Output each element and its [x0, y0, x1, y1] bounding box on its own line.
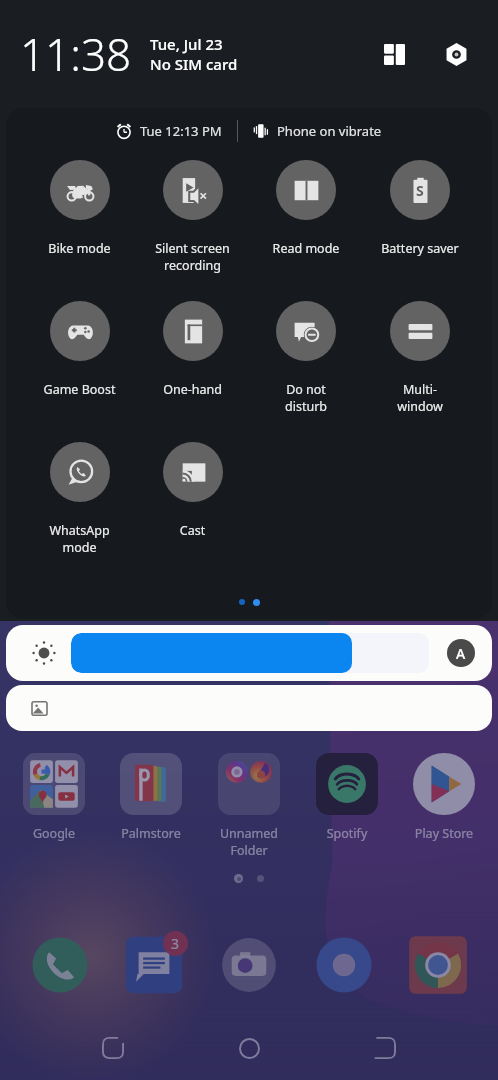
button[interactable]: Phone	[25, 930, 95, 1000]
button[interactable]: Settings	[438, 36, 474, 72]
button[interactable]: Auto brightness	[6, 625, 492, 681]
button[interactable]: Cast	[136, 436, 249, 577]
button[interactable]: Camera	[214, 930, 284, 1000]
button[interactable]: Game Boost	[23, 295, 136, 436]
button[interactable]: Home	[226, 1025, 272, 1071]
staticText: Spotify	[303, 825, 391, 842]
button[interactable]: Google	[10, 753, 98, 842]
staticText: Silent screen recording	[136, 240, 249, 273]
staticText: Unnamed Folder	[205, 825, 293, 858]
button[interactable]: Do not disturb	[249, 295, 363, 436]
button[interactable]	[6, 685, 492, 731]
staticText: WhatsApp mode	[23, 522, 136, 555]
button[interactable]: Auto brightness	[447, 639, 475, 667]
staticText: S	[416, 181, 424, 200]
staticText: A	[456, 644, 466, 663]
staticText: Battery saver	[363, 240, 477, 257]
staticText: Tue 12:13 PM	[140, 122, 222, 140]
staticText: Palmstore	[107, 825, 195, 842]
button[interactable]: Palmstore	[107, 753, 195, 842]
staticText: No SIM card	[150, 54, 238, 74]
staticText: One-hand	[136, 381, 249, 398]
staticText: Cast	[136, 522, 249, 539]
staticText: Phone on vibrate	[277, 122, 382, 140]
staticText: Play Store	[400, 825, 488, 842]
button[interactable]: Back	[90, 1025, 136, 1071]
button[interactable]: S	[363, 154, 477, 295]
button[interactable]: Bike mode	[23, 154, 136, 295]
button[interactable]: Read mode	[249, 154, 363, 295]
button[interactable]: Assistant	[309, 930, 379, 1000]
button[interactable]: Edit tiles	[376, 36, 412, 72]
staticText: Google	[10, 825, 98, 842]
button[interactable]: Play Store	[400, 753, 488, 842]
staticText: Bike mode	[23, 240, 136, 257]
staticText: Do not disturb	[249, 381, 363, 414]
button[interactable]: Multi- window	[363, 295, 477, 436]
staticText: 11:38	[20, 24, 132, 84]
button[interactable]: Unnamed Folder	[205, 753, 293, 858]
staticText: 3	[171, 934, 180, 953]
button[interactable]: Chrome	[403, 930, 473, 1000]
button[interactable]: Spotify	[303, 753, 391, 842]
button[interactable]: Silent screen recording	[136, 154, 249, 295]
staticText: Read mode	[249, 240, 363, 257]
staticText: Multi- window	[363, 381, 477, 414]
button[interactable]: One-hand	[136, 295, 249, 436]
button[interactable]: Recents	[362, 1025, 408, 1071]
button[interactable]: WhatsApp mode	[23, 436, 136, 577]
staticText: Game Boost	[23, 381, 136, 398]
staticText: Tue, Jul 23	[150, 34, 223, 54]
button[interactable]: Messages	[119, 930, 189, 1000]
